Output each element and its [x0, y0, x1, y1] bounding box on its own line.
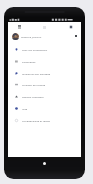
button[interactable]: Séverine Johnson [8, 29, 81, 43]
button[interactable]: Menu [16, 23, 23, 30]
staticText: Confidentialité et règles [22, 119, 50, 122]
staticText: Invitations par message [22, 72, 51, 75]
button[interactable]: Aide [8, 102, 81, 114]
staticText: Paramètres [22, 60, 36, 63]
button[interactable]: Profile [69, 25, 73, 29]
button[interactable]: Signaler problème [8, 90, 81, 102]
staticText: Sans vos notifications [22, 48, 48, 51]
staticText: Changer de compte [22, 83, 46, 86]
staticText: Séverine Johnson [21, 35, 42, 38]
button[interactable]: Sans vos notifications [8, 43, 81, 55]
staticText: Signaler problème [22, 95, 44, 98]
button[interactable]: Paramètres [8, 55, 81, 67]
staticText: Aide [22, 107, 28, 110]
button[interactable]: Invitations par message [8, 67, 81, 79]
button[interactable]: Confidentialité et règles [8, 114, 81, 126]
button[interactable]: Changer de compte [8, 78, 81, 90]
button[interactable]: Expand account list [74, 34, 78, 38]
